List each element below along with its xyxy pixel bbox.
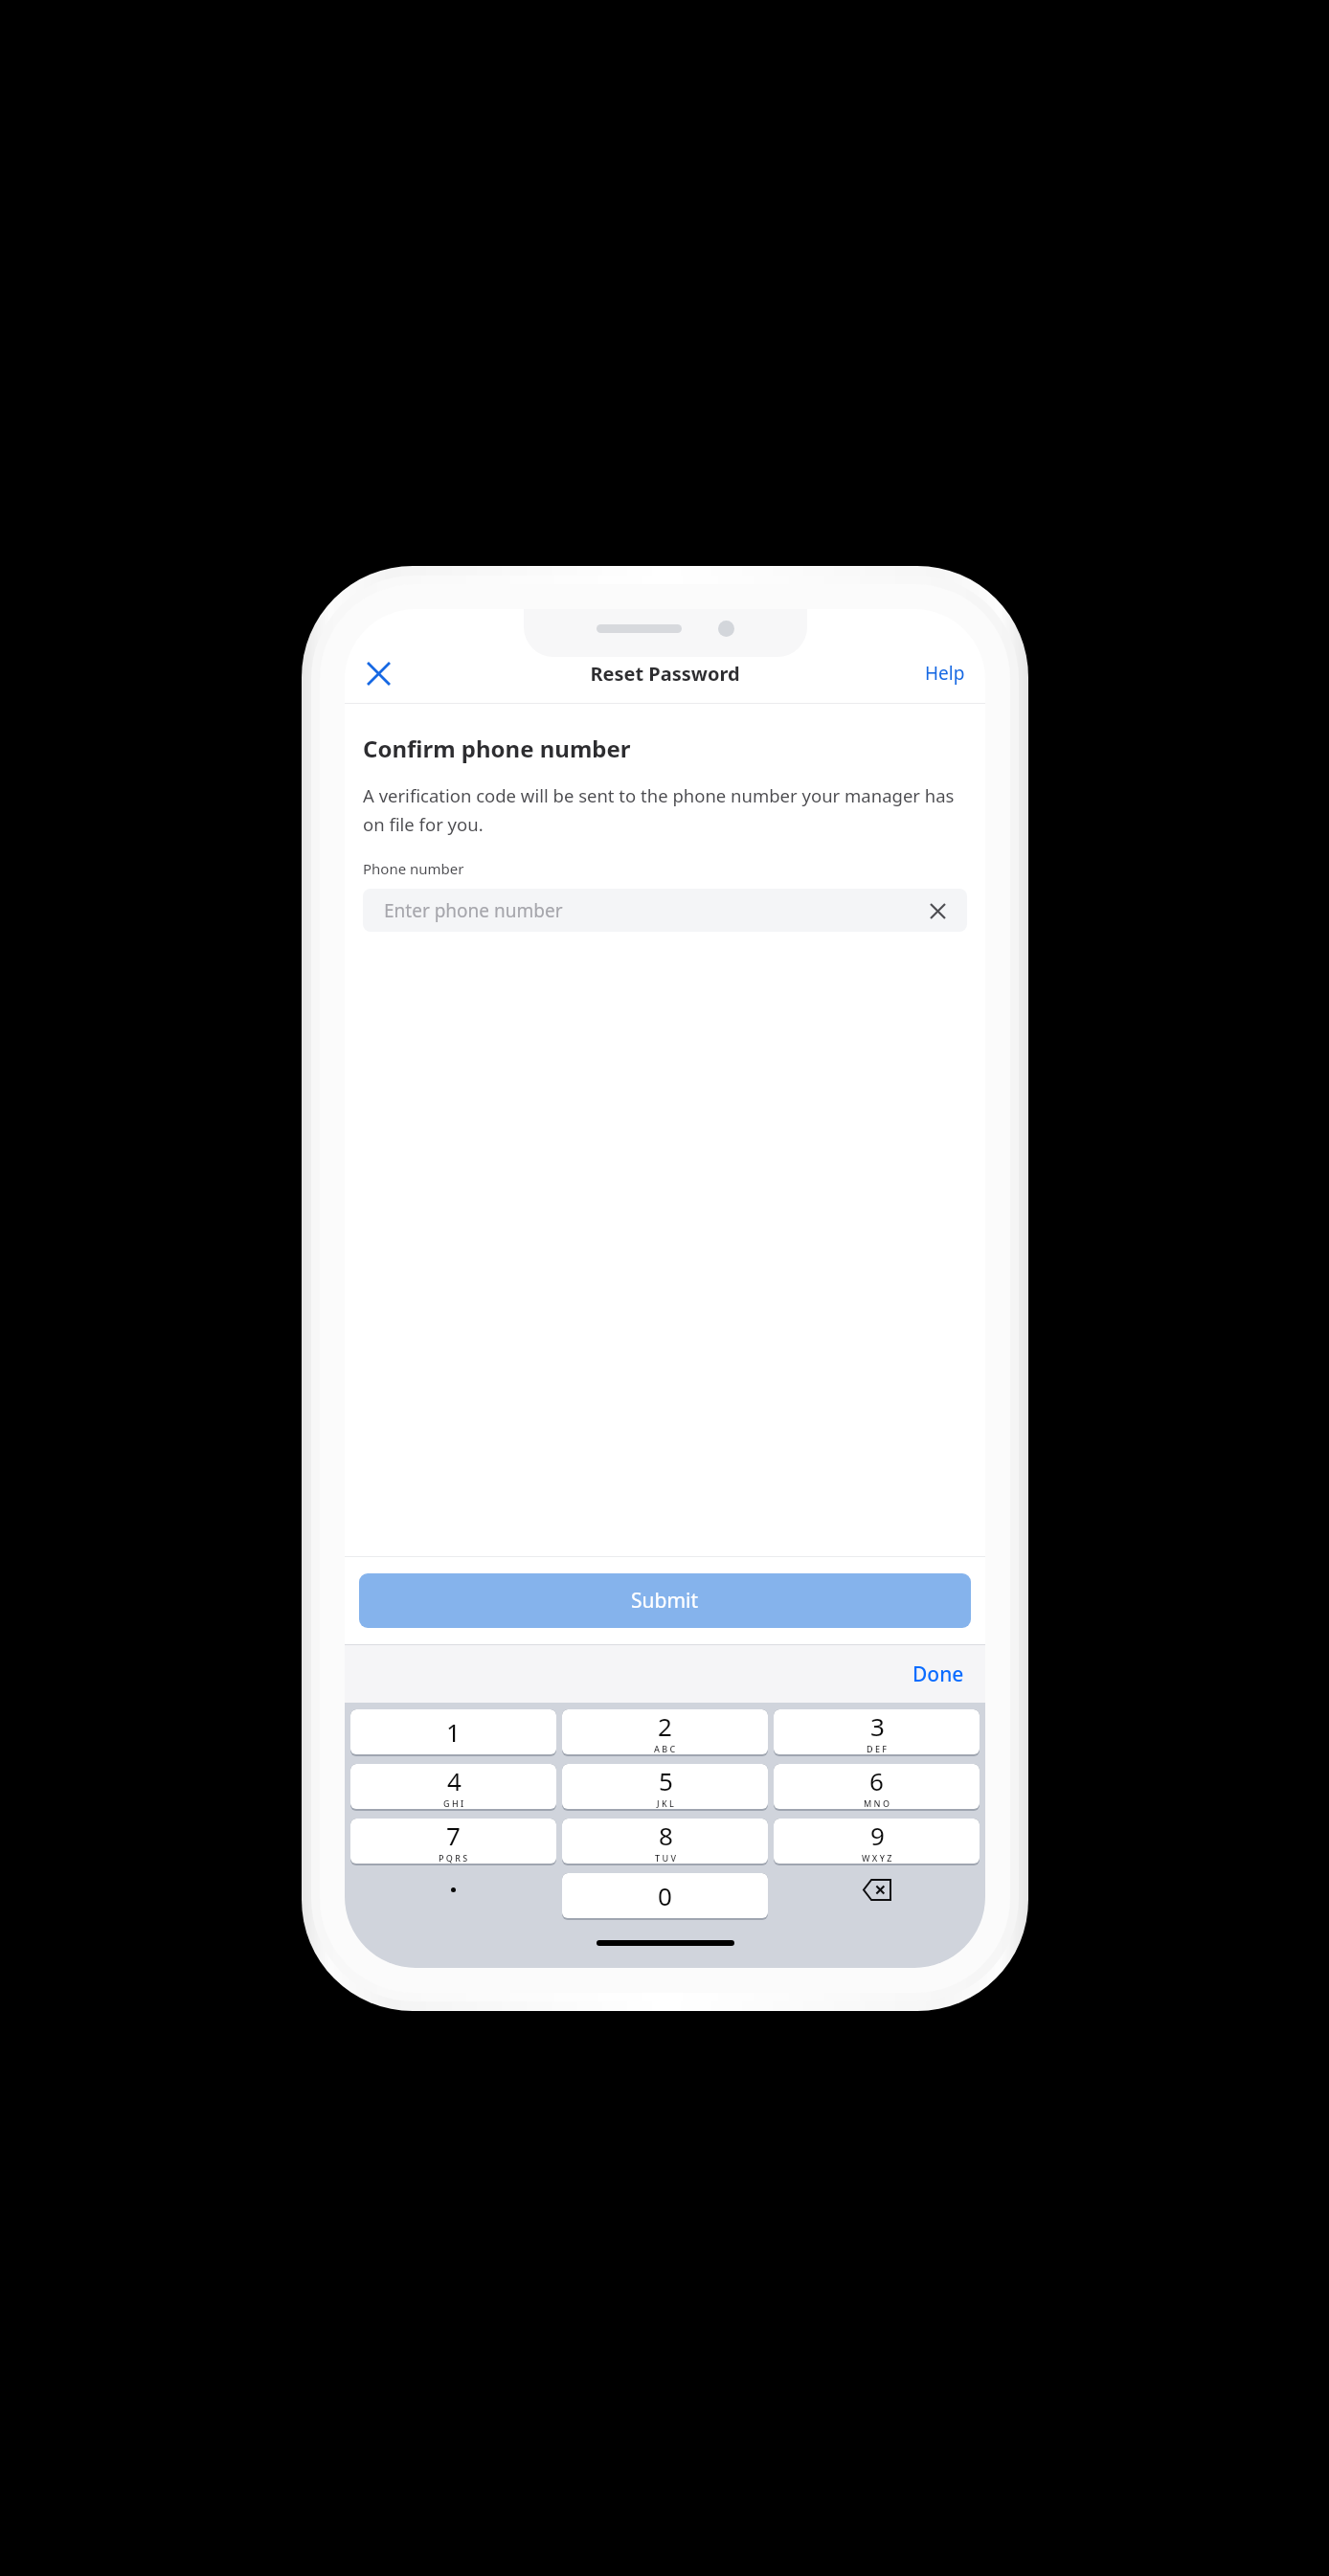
staticText: P Q R S	[439, 1852, 468, 1864]
staticText: 8	[659, 1819, 673, 1852]
button[interactable]: 0	[562, 1873, 768, 1920]
staticText: D E F	[867, 1743, 888, 1754]
staticText: Phone number	[363, 859, 464, 878]
staticText: Enter phone number	[384, 898, 563, 923]
button[interactable]: 2	[562, 1709, 768, 1756]
button[interactable]: Help	[920, 653, 970, 693]
button[interactable]: Done	[908, 1653, 969, 1696]
staticText: Done	[912, 1661, 964, 1688]
staticText: 7	[446, 1819, 461, 1852]
staticText: M N O	[864, 1797, 890, 1809]
button[interactable]: 5	[562, 1764, 768, 1811]
button[interactable]: 4	[350, 1764, 556, 1811]
button[interactable]: Backspace	[774, 1873, 980, 1920]
button[interactable]: 9	[774, 1819, 980, 1865]
button[interactable]: 3	[774, 1709, 980, 1756]
staticText: J K L	[657, 1797, 674, 1809]
staticText: Confirm phone number	[363, 733, 631, 764]
button[interactable]: 6	[774, 1764, 980, 1811]
staticText: T U V	[655, 1852, 676, 1864]
button[interactable]: 1	[350, 1709, 556, 1756]
button[interactable]: Submit	[359, 1573, 971, 1628]
staticText: G H I	[443, 1797, 464, 1809]
staticText: 4	[447, 1764, 462, 1797]
staticText: 2	[658, 1709, 672, 1743]
button[interactable]: Enter phone number	[363, 889, 967, 932]
button[interactable]: Clear	[924, 897, 951, 924]
button[interactable]: Close	[355, 650, 401, 696]
staticText: A verification code will be sent to the …	[363, 783, 967, 837]
button[interactable]: 7	[350, 1819, 556, 1865]
staticText: Submit	[631, 1587, 699, 1615]
staticText: 1	[446, 1715, 461, 1749]
staticText: 6	[869, 1764, 884, 1797]
staticText: A B C	[654, 1743, 676, 1754]
staticText: Help	[925, 661, 965, 686]
staticText: 5	[659, 1764, 673, 1797]
staticText: 3	[870, 1709, 885, 1743]
button[interactable]: 8	[562, 1819, 768, 1865]
staticText: W X Y Z	[862, 1852, 892, 1864]
staticText: 0	[658, 1879, 672, 1912]
button[interactable]: Period	[350, 1873, 556, 1920]
staticText: 9	[870, 1819, 885, 1852]
staticText: Reset Password	[590, 661, 740, 687]
